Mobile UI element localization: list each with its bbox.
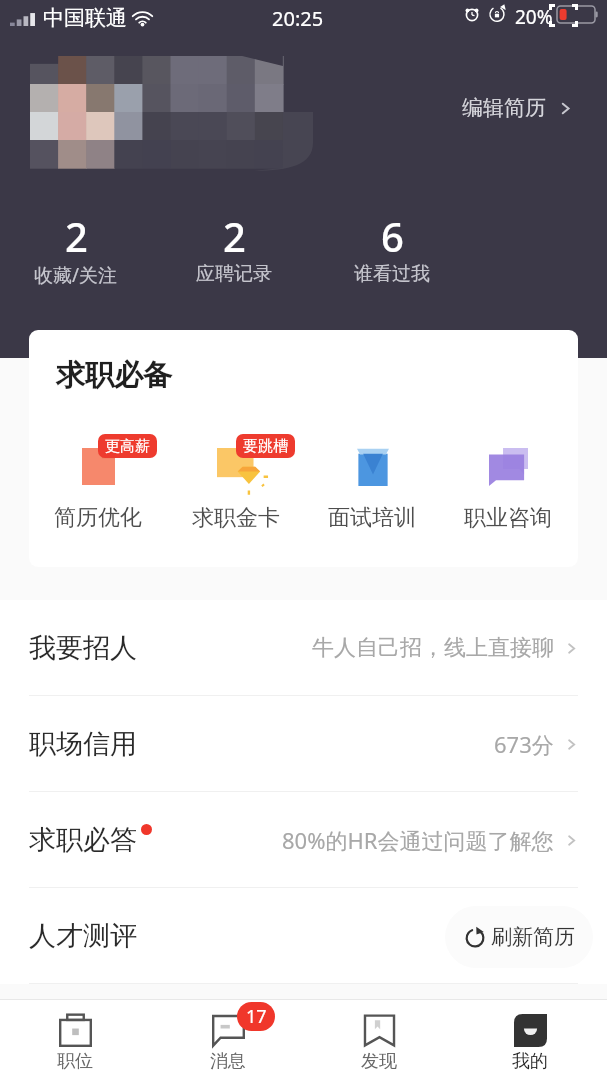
staticText: 面试培训 xyxy=(328,504,416,532)
other: Messages xyxy=(0,0,607,1080)
button[interactable]: 发现 xyxy=(309,1000,449,1080)
staticText: 求职金卡 xyxy=(192,504,280,532)
staticText: 简历优化 xyxy=(54,504,142,532)
staticText: 谁看过我 xyxy=(354,262,430,286)
staticText: 求职必备 xyxy=(56,357,172,394)
staticText: 2 xyxy=(65,209,88,263)
staticText: 我要招人 xyxy=(29,631,137,665)
staticText: 更高薪 xyxy=(105,437,150,456)
staticText: 求职必答 xyxy=(29,823,137,857)
button[interactable]: 职位 xyxy=(5,1000,145,1080)
staticText: 80%的HR会通过问题了解您 xyxy=(282,825,554,855)
staticText: 20% xyxy=(515,4,553,30)
staticText: 20:25 xyxy=(272,5,324,32)
button[interactable]: 职业咨询 xyxy=(448,438,568,538)
other: Mine xyxy=(0,0,607,1080)
staticText: 消息 xyxy=(210,1050,246,1073)
staticText: 6 xyxy=(381,209,404,263)
staticText: 2 xyxy=(223,209,246,263)
staticText: 刷新简历 xyxy=(491,924,575,950)
other: Jobs xyxy=(0,0,607,1080)
button[interactable]: 面试培训 xyxy=(312,438,432,538)
staticText: 中国联通 xyxy=(43,5,127,31)
staticText: 职场信用 xyxy=(29,727,137,761)
button[interactable]: 刷新简历 xyxy=(445,906,593,968)
button[interactable]: 消息 xyxy=(158,1000,298,1080)
other: Discover xyxy=(0,0,607,1080)
staticText: 发现 xyxy=(361,1050,397,1073)
button[interactable]: 2 xyxy=(6,206,146,296)
button[interactable]: 求职必答 xyxy=(0,792,607,888)
button[interactable]: 职场信用 xyxy=(0,696,607,792)
staticText: 应聘记录 xyxy=(196,262,272,286)
staticText: 我的 xyxy=(512,1050,548,1073)
staticText: 职业咨询 xyxy=(464,504,552,532)
button[interactable]: 2 xyxy=(164,206,304,296)
staticText: 要跳槽 xyxy=(243,437,288,456)
button[interactable]: 求职金卡 xyxy=(176,438,296,538)
staticText: 牛人自己招，线上直接聊 xyxy=(312,634,554,662)
button[interactable]: 编辑简历 xyxy=(462,92,574,124)
staticText: 673分 xyxy=(494,729,554,759)
button[interactable]: 6 xyxy=(322,206,462,296)
staticText: 职位 xyxy=(57,1050,93,1073)
button[interactable]: 简历优化 xyxy=(38,438,158,538)
staticText: 人才测评 xyxy=(29,919,137,953)
button[interactable]: 我的 xyxy=(460,1000,600,1080)
staticText: 编辑简历 xyxy=(462,95,546,121)
button[interactable]: 人才测评 xyxy=(0,888,607,984)
staticText: 收藏/关注 xyxy=(34,262,118,288)
button[interactable]: 我要招人 xyxy=(0,600,607,696)
staticText: 17 xyxy=(246,1004,267,1029)
